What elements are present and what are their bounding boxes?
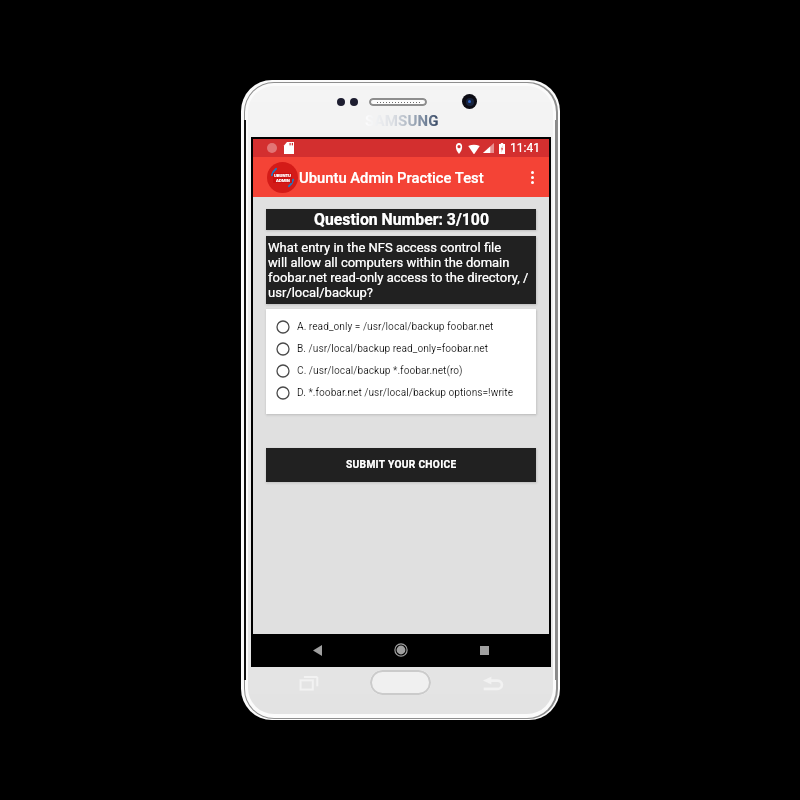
- staticText: B. /usr/local/backup read_only=foobar.ne…: [297, 343, 489, 355]
- staticText: C. /usr/local/backup *.foobar.net(ro): [297, 365, 463, 377]
- button[interactable]: C. /usr/local/backup *.foobar.net(ro): [266, 360, 536, 382]
- staticText: Question Number: 3/100: [314, 210, 489, 229]
- staticText: What entry in the NFS access control fil…: [268, 240, 529, 300]
- staticText: D. *.foobar.net /usr/local/backup option…: [297, 387, 514, 399]
- button[interactable]: Back: [300, 634, 334, 666]
- staticText: SUBMIT YOUR CHOICE: [346, 459, 457, 471]
- button[interactable]: B. /usr/local/backup read_only=foobar.ne…: [266, 338, 536, 360]
- staticText: A. read_only = /usr/local/backup foobar.…: [297, 321, 494, 333]
- button[interactable]: A. read_only = /usr/local/backup foobar.…: [266, 316, 536, 338]
- button[interactable]: Recents: [467, 634, 501, 666]
- button[interactable]: More options: [515, 160, 549, 194]
- button[interactable]: SUBMIT YOUR CHOICE: [266, 448, 536, 482]
- button[interactable]: Home: [384, 634, 418, 666]
- staticText: SAMSUNG: [365, 112, 439, 130]
- staticText: 11:41: [510, 141, 540, 155]
- button[interactable]: D. *.foobar.net /usr/local/backup option…: [266, 382, 536, 404]
- staticText: Ubuntu Admin Practice Test: [299, 169, 484, 186]
- staticText: ADMIN: [276, 178, 290, 183]
- staticText: UBUNTU: [274, 173, 291, 178]
